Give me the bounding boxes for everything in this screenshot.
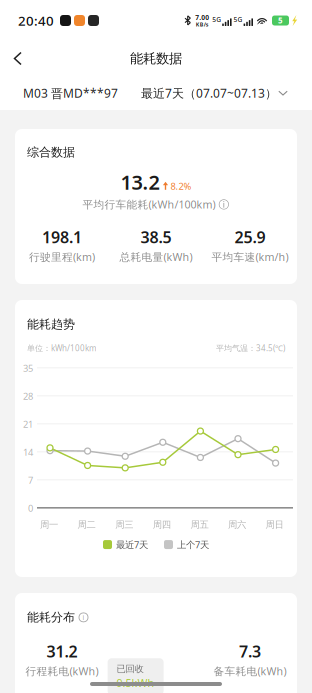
staticText: 25.9 bbox=[234, 226, 265, 248]
staticText: 周六 bbox=[228, 519, 246, 530]
staticText: 0 bbox=[28, 502, 33, 514]
staticText: 5G bbox=[212, 15, 221, 24]
staticText: 周二 bbox=[78, 519, 96, 530]
button[interactable]: Back bbox=[0, 41, 36, 76]
staticText: 198.1 bbox=[42, 226, 82, 248]
staticText: 最近7天（07.07~07.13） bbox=[141, 85, 277, 101]
staticText: 已回收 bbox=[117, 663, 144, 675]
staticText: M03 晋MD***97 bbox=[23, 85, 118, 101]
staticText: 周三 bbox=[115, 519, 133, 530]
staticText: 9.5kWh bbox=[117, 676, 155, 690]
staticText: 能耗数据 bbox=[130, 50, 182, 67]
staticText: 7 bbox=[28, 474, 33, 486]
staticText: 平均车速(km/h) bbox=[211, 250, 288, 264]
staticText: 周五 bbox=[190, 519, 208, 530]
staticText: 21 bbox=[23, 418, 33, 430]
staticText: 单位：kWh/100km bbox=[27, 343, 96, 353]
staticText: 7.3 bbox=[239, 641, 261, 662]
staticText: 能耗趋势 bbox=[27, 317, 75, 332]
staticText: 5G bbox=[234, 15, 243, 24]
staticText: 13.2 bbox=[120, 169, 159, 195]
staticText: 平均行车能耗(kWh/100km) ⓘ bbox=[82, 197, 229, 211]
staticText: 行程耗电(kWh) bbox=[25, 664, 98, 678]
button[interactable]: 最近7天（07.07~07.13） bbox=[141, 85, 288, 101]
staticText: 20:40 bbox=[18, 12, 54, 29]
staticText: 行驶里程(km) bbox=[29, 250, 95, 264]
staticText: 7.00 bbox=[195, 13, 209, 22]
staticText: 周一 bbox=[40, 519, 58, 530]
staticText: 最近7天 bbox=[116, 538, 148, 551]
staticText: 上个7天 bbox=[177, 538, 209, 551]
staticText: 5 bbox=[278, 15, 283, 26]
button[interactable]: M03 晋MD***97 bbox=[23, 85, 118, 101]
staticText: 能耗分布 bbox=[27, 610, 75, 625]
staticText: i bbox=[82, 613, 84, 622]
staticText: KB/s bbox=[196, 21, 209, 28]
staticText: 综合数据 bbox=[27, 145, 75, 160]
staticText: 平均气温：34.5(℃) bbox=[216, 343, 285, 353]
staticText: 8.2% bbox=[170, 180, 191, 192]
staticText: 31.2 bbox=[46, 641, 77, 662]
staticText: 周四 bbox=[153, 519, 171, 530]
staticText: 35 bbox=[23, 362, 33, 374]
staticText: 14 bbox=[23, 446, 33, 458]
staticText: 周日 bbox=[266, 519, 284, 530]
staticText: 备车耗电(kWh) bbox=[213, 664, 286, 678]
staticText: 38.5 bbox=[140, 226, 171, 248]
staticText: 28 bbox=[23, 390, 33, 402]
staticText: 总耗电量(kWh) bbox=[119, 250, 192, 264]
